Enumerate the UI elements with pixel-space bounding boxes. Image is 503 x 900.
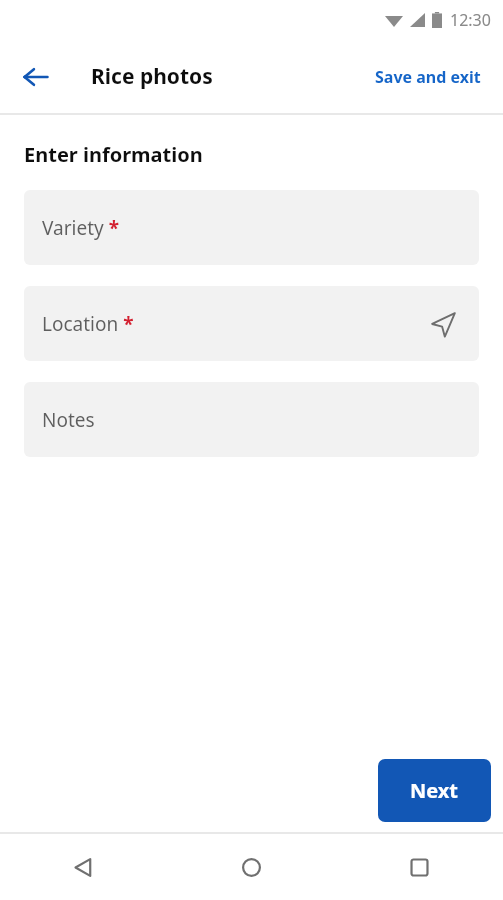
button[interactable]: Back xyxy=(0,834,167,900)
staticText: Variety * xyxy=(42,215,119,241)
button[interactable]: Next xyxy=(378,759,491,822)
button[interactable]: Save and exit xyxy=(353,52,503,102)
staticText: 12:30 xyxy=(450,9,491,31)
button[interactable]: Notes xyxy=(24,382,479,457)
button[interactable]: Variety * xyxy=(24,190,479,265)
staticText: Next xyxy=(410,777,459,804)
staticText: Location * xyxy=(42,311,134,337)
staticText: Save and exit xyxy=(375,66,481,88)
staticText: Rice photos xyxy=(91,62,213,91)
staticText: Notes xyxy=(42,407,95,433)
button[interactable]: Use current location xyxy=(421,302,465,346)
button[interactable]: Home xyxy=(167,834,335,900)
staticText: Enter information xyxy=(24,141,203,168)
button[interactable]: Back xyxy=(10,51,62,103)
button[interactable]: Location * xyxy=(24,286,479,361)
button[interactable]: Recents xyxy=(335,834,503,900)
